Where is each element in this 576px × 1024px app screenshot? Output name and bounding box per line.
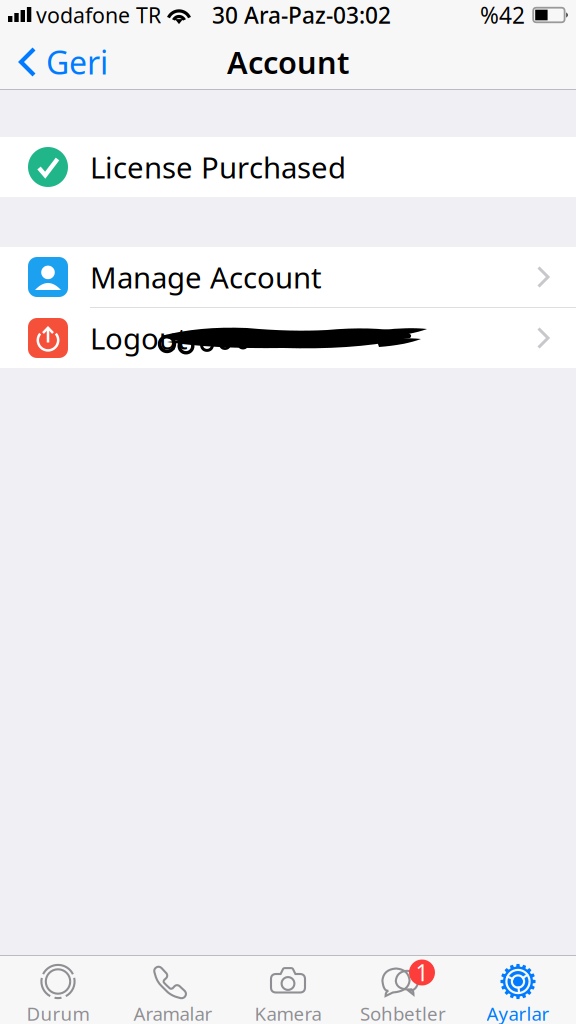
staticText: Durum — [26, 1001, 89, 1024]
staticText: 30 Ara-Paz-03:02 — [212, 0, 391, 30]
button[interactable]: 1 — [345, 956, 460, 1024]
button[interactable]: License Purchased — [0, 137, 576, 197]
staticText: Account — [227, 42, 349, 82]
staticText: Sohbetler — [360, 1001, 446, 1024]
button[interactable]: Aramalar — [115, 956, 230, 1024]
button[interactable]: Geri — [0, 35, 126, 89]
staticText: License Purchased — [90, 147, 346, 186]
staticText: Kamera — [254, 1001, 321, 1024]
staticText: Ayarlar — [486, 1001, 549, 1024]
staticText: %42 — [480, 0, 525, 30]
button[interactable]: Durum — [0, 956, 115, 1024]
staticText: 1 — [415, 957, 428, 987]
staticText: Geri — [46, 41, 108, 83]
staticText: Manage Account — [90, 257, 322, 296]
staticText: vodafone TR — [36, 1, 161, 29]
staticText: Logout — [90, 318, 188, 357]
button[interactable]: Ayarlar — [460, 956, 575, 1024]
staticText: Aramalar — [133, 1001, 212, 1024]
button[interactable]: Manage Account — [0, 247, 576, 307]
button[interactable]: Kamera — [230, 956, 345, 1024]
button[interactable]: Logout — [0, 308, 576, 368]
